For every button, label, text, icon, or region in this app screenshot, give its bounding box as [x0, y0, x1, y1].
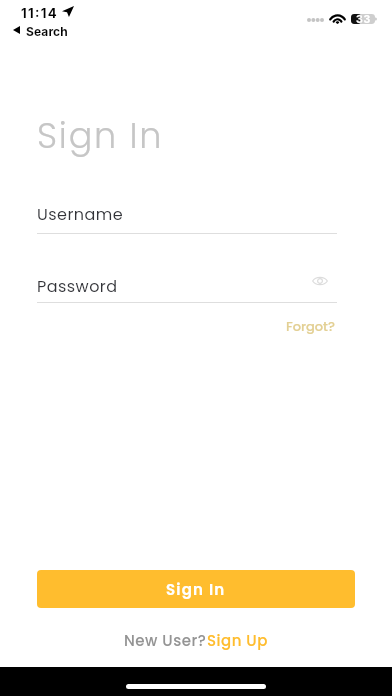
button[interactable]: Show password	[308, 269, 332, 293]
staticText: Sign Up	[207, 630, 268, 651]
staticText: New User?	[124, 630, 207, 651]
staticText: Search	[26, 24, 68, 39]
button[interactable]: Sign In	[37, 570, 355, 608]
staticText: 33	[356, 13, 371, 26]
staticText: 11:14	[21, 5, 58, 21]
staticText: Sign In	[166, 579, 226, 600]
button[interactable]: Sign Up	[207, 630, 268, 651]
staticText: Password	[37, 275, 118, 297]
staticText: Username	[37, 203, 124, 225]
staticText: Forgot?	[286, 317, 335, 335]
staticText: Sign In	[37, 111, 164, 160]
button[interactable]: Forgot?	[281, 315, 340, 337]
